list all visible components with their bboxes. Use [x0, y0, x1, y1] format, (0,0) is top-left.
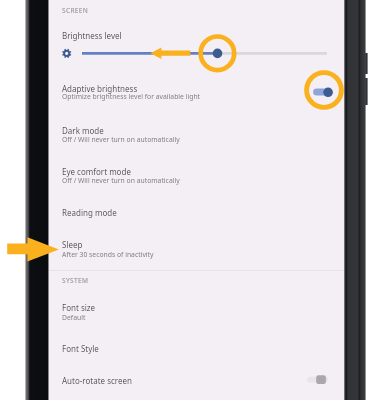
button[interactable]: Sleep	[49, 229, 344, 271]
staticText: Default	[62, 313, 86, 322]
button[interactable]: Reading mode	[49, 197, 344, 229]
staticText: Dark mode	[62, 125, 104, 136]
button[interactable]: Eye comfort mode	[49, 156, 344, 198]
staticText: Adaptive brightness	[62, 83, 138, 94]
staticText: Optimize brightness level for available …	[62, 92, 201, 101]
button[interactable]: Dark mode	[49, 115, 344, 157]
staticText: Reading mode	[62, 207, 117, 218]
button[interactable]: Auto-rotate screen toggle	[307, 375, 335, 389]
button[interactable]: Brightness slider	[49, 40, 344, 66]
button[interactable]: Font size	[49, 292, 344, 334]
staticText: Eye comfort mode	[62, 166, 131, 177]
staticText: Sleep	[62, 239, 83, 250]
staticText: SCREEN	[62, 6, 89, 15]
button[interactable]: Adaptive brightness	[49, 73, 344, 115]
staticText: After 30 seconds of inactivity	[62, 250, 154, 259]
staticText: Off / Will never turn on automatically	[62, 135, 180, 144]
button[interactable]: Adaptive brightness toggle	[311, 84, 335, 101]
staticText: Off / Will never turn on automatically	[62, 176, 180, 185]
staticText: Brightness level	[62, 30, 122, 41]
staticText: Font size	[62, 302, 96, 313]
staticText: Font Style	[62, 343, 99, 354]
staticText: SYSTEM	[62, 276, 89, 285]
staticText: Auto-rotate screen	[62, 375, 132, 386]
button[interactable]: Font Style	[49, 333, 344, 365]
button[interactable]: Auto-rotate screen	[49, 365, 344, 397]
